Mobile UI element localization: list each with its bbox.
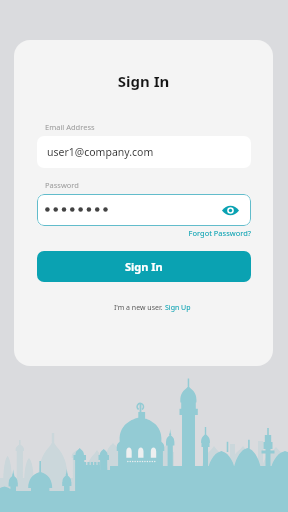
staticText: Password xyxy=(45,180,79,190)
button[interactable]: user1@company.com xyxy=(37,136,251,168)
button[interactable]: Sign Up xyxy=(165,303,191,313)
staticText: Sign In xyxy=(125,259,163,274)
staticText: I'm a new user. xyxy=(114,303,165,313)
staticText: user1@company.com xyxy=(47,145,154,159)
button[interactable]: Show password xyxy=(37,194,251,226)
button[interactable]: Forgot Password? xyxy=(164,228,251,238)
staticText: Sign In xyxy=(14,71,273,91)
button[interactable]: Show password xyxy=(219,194,241,226)
button[interactable]: Sign In xyxy=(37,251,251,282)
staticText: Email Address xyxy=(45,122,95,132)
